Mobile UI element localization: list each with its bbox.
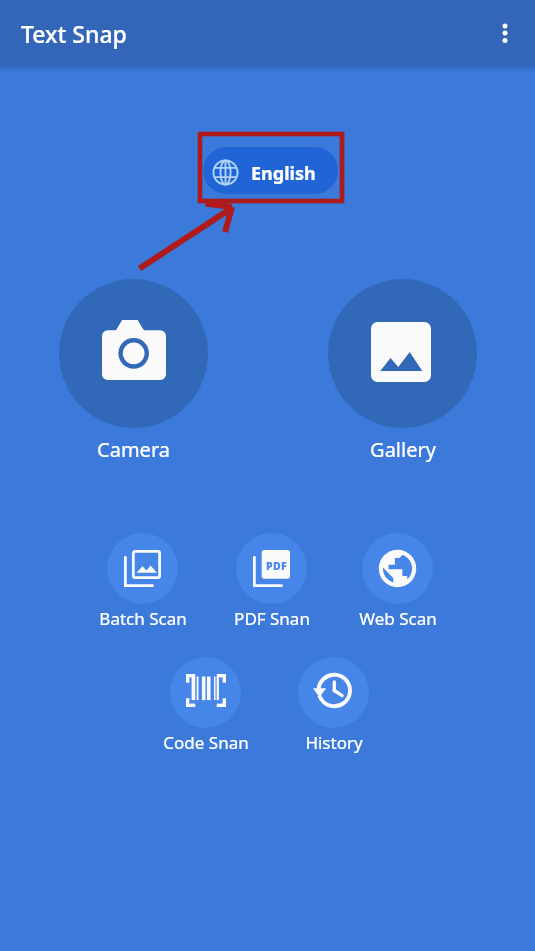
- staticText: Gallery: [370, 436, 436, 463]
- button[interactable]: Gallery: [328, 279, 477, 463]
- button[interactable]: Web Scan: [332, 533, 463, 630]
- staticText: Code Snan: [163, 731, 249, 754]
- staticText: Text Snap: [21, 18, 127, 49]
- button[interactable]: Batch Scan: [77, 533, 208, 630]
- button[interactable]: More options: [474, 0, 535, 66]
- staticText: Web Scan: [359, 607, 437, 630]
- button[interactable]: Camera: [59, 279, 208, 463]
- button[interactable]: Code Snan: [140, 657, 271, 754]
- staticText: History: [305, 731, 363, 754]
- staticText: Batch Scan: [99, 607, 187, 630]
- button[interactable]: History: [268, 657, 399, 754]
- staticText: English: [251, 161, 316, 186]
- button[interactable]: English: [203, 147, 338, 194]
- staticText: Camera: [97, 436, 170, 463]
- staticText: PDF: [266, 559, 287, 573]
- staticText: PDF Snan: [234, 607, 310, 630]
- button[interactable]: PDF: [206, 533, 337, 630]
